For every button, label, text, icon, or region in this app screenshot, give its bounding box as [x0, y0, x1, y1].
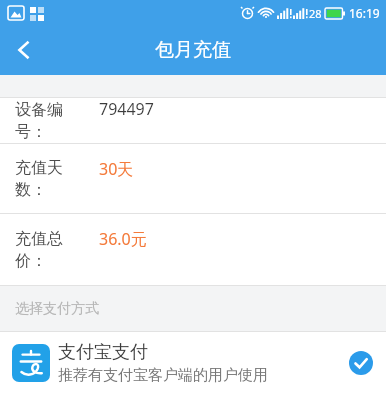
staticText: 充值总价：	[15, 229, 83, 270]
staticText: 30天	[99, 158, 134, 180]
staticText: 支付宝支付	[58, 341, 148, 364]
button[interactable]: Selected	[348, 350, 374, 376]
staticText: 36.0元	[99, 228, 147, 250]
staticText: 794497	[99, 98, 154, 120]
staticText: 包月充值	[155, 38, 231, 62]
staticText: 充值天数：	[15, 158, 83, 199]
button[interactable]: Back	[0, 26, 48, 74]
staticText: 推荐有支付宝客户端的用户使用	[58, 366, 268, 385]
staticText: 28	[309, 6, 322, 21]
staticText: 设备编号：	[15, 100, 83, 141]
staticText: 16:19	[349, 5, 380, 21]
button[interactable]: 支付宝支付	[0, 332, 386, 394]
staticText: 选择支付方式	[15, 300, 99, 318]
